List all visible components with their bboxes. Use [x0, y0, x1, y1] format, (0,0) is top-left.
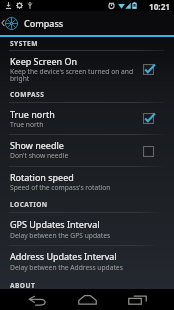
staticText: Rotation speed: [10, 171, 74, 183]
staticText: True north: [10, 120, 140, 129]
staticText: GPS Updates Interval: [10, 218, 100, 230]
staticText: Keep Screen On: [10, 55, 78, 67]
staticText: LOCATION: [10, 200, 48, 209]
staticText: True north: [10, 108, 55, 120]
staticText: ABOUT: [10, 281, 36, 290]
button[interactable]: [0, 245, 174, 277]
staticText: Delay between the GPS updates: [10, 231, 140, 240]
button[interactable]: [0, 213, 174, 244]
staticText: 10:21: [149, 1, 171, 12]
staticText: Compass: [24, 17, 64, 29]
staticText: Don't show needle: [10, 151, 140, 160]
staticText: Show needle: [10, 139, 64, 151]
staticText: Keep the device's screen turned on and b…: [10, 67, 140, 83]
staticText: Address Updates Interval: [10, 250, 117, 262]
button[interactable]: Back: [12, 289, 62, 310]
button[interactable]: [0, 166, 174, 196]
staticText: COMPASS: [10, 90, 45, 99]
button[interactable]: [0, 134, 174, 165]
staticText: Delay between the Address updates: [10, 263, 140, 272]
button[interactable]: Recent apps: [112, 289, 162, 310]
staticText: Speed of the compass's rotation: [10, 183, 140, 192]
button[interactable]: Navigate up: [0, 11, 18, 35]
staticText: SYSTEM: [10, 39, 38, 48]
button[interactable]: [0, 51, 174, 84]
button[interactable]: Home: [62, 289, 112, 310]
button[interactable]: [0, 104, 174, 133]
